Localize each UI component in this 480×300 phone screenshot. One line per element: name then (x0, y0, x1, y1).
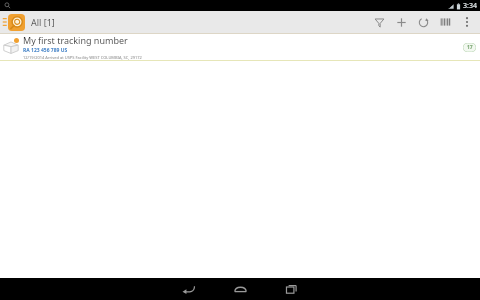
button[interactable]: Back (162, 278, 214, 300)
staticText: All [1] (31, 16, 368, 28)
staticText: 3:34 (463, 1, 477, 11)
button[interactable]: Navigate up (0, 11, 27, 33)
button[interactable]: Recent apps (266, 278, 318, 300)
staticText: 17 (467, 44, 473, 51)
staticText: RA 123 456 789 US (23, 47, 68, 54)
button[interactable]: Scan barcode (434, 11, 456, 33)
button[interactable]: More options (456, 11, 478, 33)
button[interactable]: Home (214, 278, 266, 300)
staticText: 12/19/2014 Arrived at USPS Facility WEST… (23, 55, 142, 60)
button[interactable]: Filter (368, 11, 390, 33)
button[interactable]: Refresh (412, 11, 434, 33)
button[interactable]: My first tracking number (0, 34, 480, 61)
staticText: My first tracking number (23, 34, 128, 46)
button[interactable]: Add (390, 11, 412, 33)
